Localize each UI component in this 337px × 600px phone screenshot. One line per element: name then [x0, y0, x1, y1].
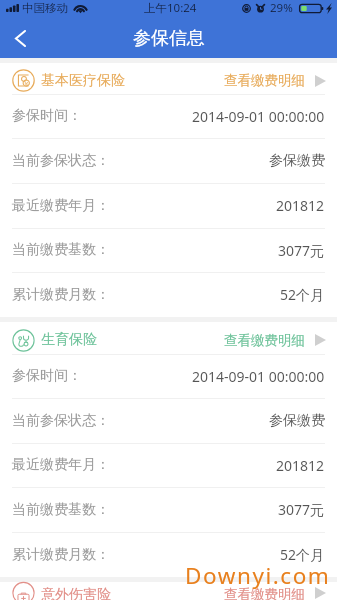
staticText: 当前缴费基数：: [12, 241, 110, 259]
staticText: 累计缴费月数：: [12, 286, 110, 304]
staticText: Downyi.com: [185, 560, 331, 591]
staticText: 201812: [276, 456, 325, 475]
button[interactable]: 参保时间：: [0, 94, 337, 138]
staticText: 当前参保状态：: [12, 412, 110, 430]
staticText: 52个月: [280, 285, 325, 304]
staticText: 参保时间：: [12, 107, 82, 125]
staticText: 基本医疗保险: [41, 72, 125, 90]
staticText: 查看缴费明细: [224, 586, 305, 600]
staticText: 29%: [270, 0, 293, 16]
staticText: 参保缴费: [269, 412, 325, 430]
button[interactable]: 最近缴费年月：: [0, 443, 337, 487]
staticText: 参保缴费: [269, 152, 325, 170]
button[interactable]: 基本医疗保险: [0, 63, 337, 94]
button[interactable]: 参保时间：: [0, 354, 337, 398]
button[interactable]: 当前参保状态：: [0, 398, 337, 443]
button[interactable]: 当前缴费基数：: [0, 228, 337, 272]
staticText: 累计缴费月数：: [12, 546, 110, 564]
staticText: 当前参保状态：: [12, 152, 110, 170]
button[interactable]: 意外伤害险: [0, 582, 337, 600]
button[interactable]: 最近缴费年月：: [0, 183, 337, 228]
staticText: 中国移动: [22, 1, 68, 15]
staticText: 2014-09-01 00:00:00: [192, 107, 325, 126]
staticText: 最近缴费年月：: [12, 456, 110, 474]
staticText: 3077元: [278, 500, 325, 519]
staticText: 生育保险: [41, 331, 97, 349]
staticText: 参保时间：: [12, 367, 82, 385]
button[interactable]: 返回: [0, 18, 40, 58]
staticText: 上午10:24: [144, 0, 197, 16]
staticText: 2014-09-01 00:00:00: [192, 367, 325, 386]
staticText: 最近缴费年月：: [12, 197, 110, 215]
staticText: 查看缴费明细: [224, 332, 305, 349]
staticText: 52个月: [280, 545, 325, 564]
staticText: 201812: [276, 196, 325, 215]
button[interactable]: 累计缴费月数：: [0, 532, 337, 577]
button[interactable]: 累计缴费月数：: [0, 272, 337, 317]
staticText: 3077元: [278, 241, 325, 260]
staticText: 查看缴费明细: [224, 72, 305, 89]
button[interactable]: 当前参保状态：: [0, 138, 337, 183]
staticText: 意外伤害险: [41, 586, 111, 600]
button[interactable]: 当前缴费基数：: [0, 487, 337, 532]
button[interactable]: 生育保险: [0, 322, 337, 354]
staticText: 当前缴费基数：: [12, 501, 110, 519]
staticText: 参保信息: [133, 27, 205, 50]
